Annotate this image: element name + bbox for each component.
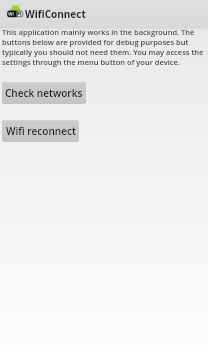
staticText: Check networks	[5, 86, 83, 100]
other: WifiConnect	[7, 4, 23, 18]
staticText: Wifi reconnect	[6, 124, 76, 138]
staticText: This application mainly works in the bac…	[2, 27, 205, 67]
staticText: WifiConnect	[25, 7, 86, 21]
button[interactable]: Check networks	[2, 82, 86, 104]
button[interactable]: Wifi reconnect	[2, 120, 79, 142]
